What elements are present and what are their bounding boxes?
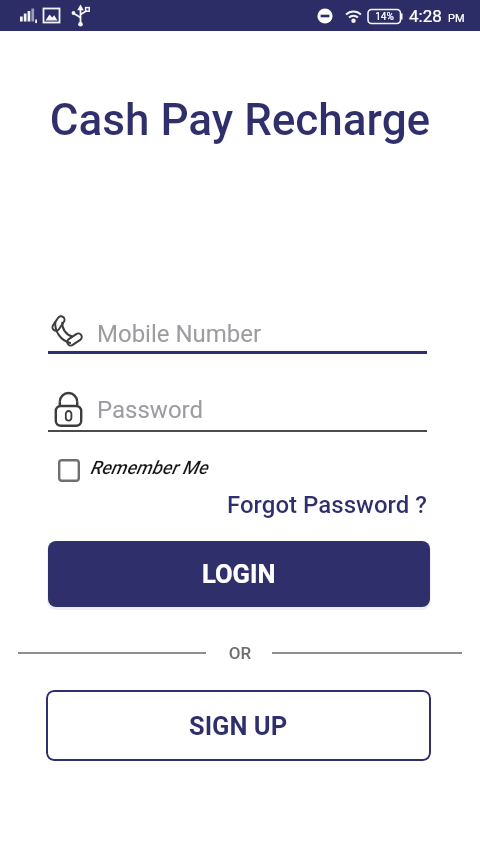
- button[interactable]: [48, 388, 427, 432]
- button[interactable]: Forgot Password ?: [227, 491, 428, 519]
- staticText: Mobile Number: [97, 320, 262, 348]
- staticText: SIGN UP: [189, 711, 288, 741]
- staticText: Cash Pay Recharge: [0, 94, 480, 146]
- staticText: OR: [0, 643, 480, 663]
- button[interactable]: [48, 310, 427, 355]
- button[interactable]: [56, 455, 196, 485]
- staticText: Remember Me: [90, 457, 208, 479]
- staticText: Password: [97, 396, 204, 424]
- staticText: LOGIN: [202, 559, 276, 589]
- button[interactable]: SIGN UP: [46, 690, 431, 761]
- button[interactable]: LOGIN: [48, 541, 430, 607]
- staticText: 4:28: [409, 6, 442, 26]
- staticText: 14%: [368, 11, 401, 23]
- staticText: PM: [448, 12, 465, 25]
